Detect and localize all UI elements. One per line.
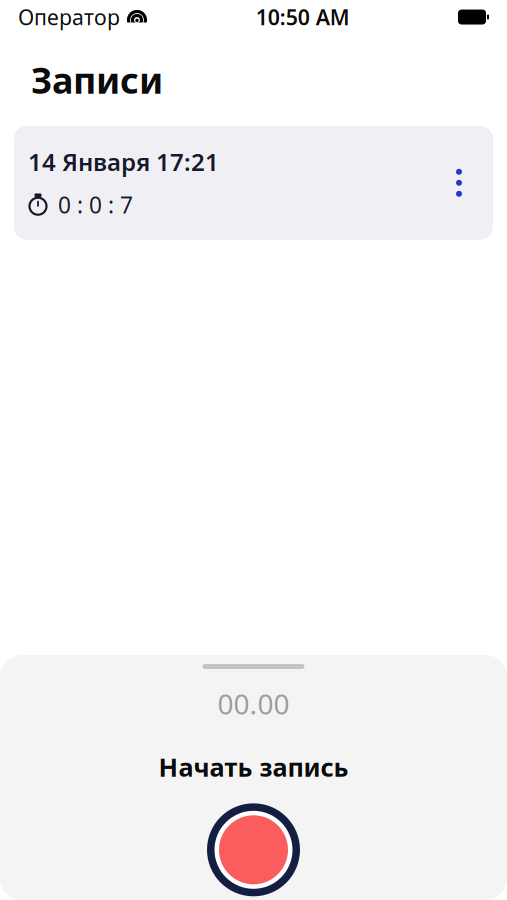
staticText: 00.00 [217,685,289,722]
staticText: Оператор [18,3,120,31]
staticText: Начать запись [158,750,348,784]
staticText: 0 : 0 : 7 [58,190,133,220]
button[interactable]: 14 Января 17:21 [14,126,493,240]
staticText: 14 Января 17:21 [28,146,219,178]
staticText: 10:50 AM [256,3,350,31]
button[interactable]: More options [439,156,479,210]
button[interactable]: Начать запись [203,800,303,900]
staticText: Записи [31,56,163,104]
